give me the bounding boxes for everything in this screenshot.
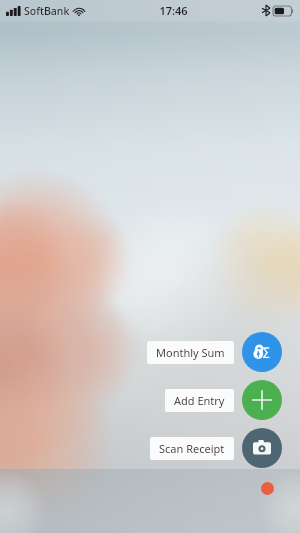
staticText: Monthly Sum: [156, 345, 225, 360]
staticText: Add Entry: [174, 393, 225, 408]
button[interactable]: Monthly Sum: [242, 332, 282, 372]
button[interactable]: Close menu: [261, 482, 274, 495]
staticText: Scan Receipt: [159, 441, 225, 456]
button[interactable]: Monthly Sum: [147, 341, 234, 364]
staticText: SoftBank: [24, 4, 70, 18]
button[interactable]: Scan Receipt: [242, 428, 282, 468]
button[interactable]: Scan Receipt: [150, 437, 234, 460]
button[interactable]: Add Entry: [165, 389, 234, 412]
button[interactable]: Add Entry: [242, 380, 282, 420]
staticText: 17:46: [159, 3, 188, 18]
